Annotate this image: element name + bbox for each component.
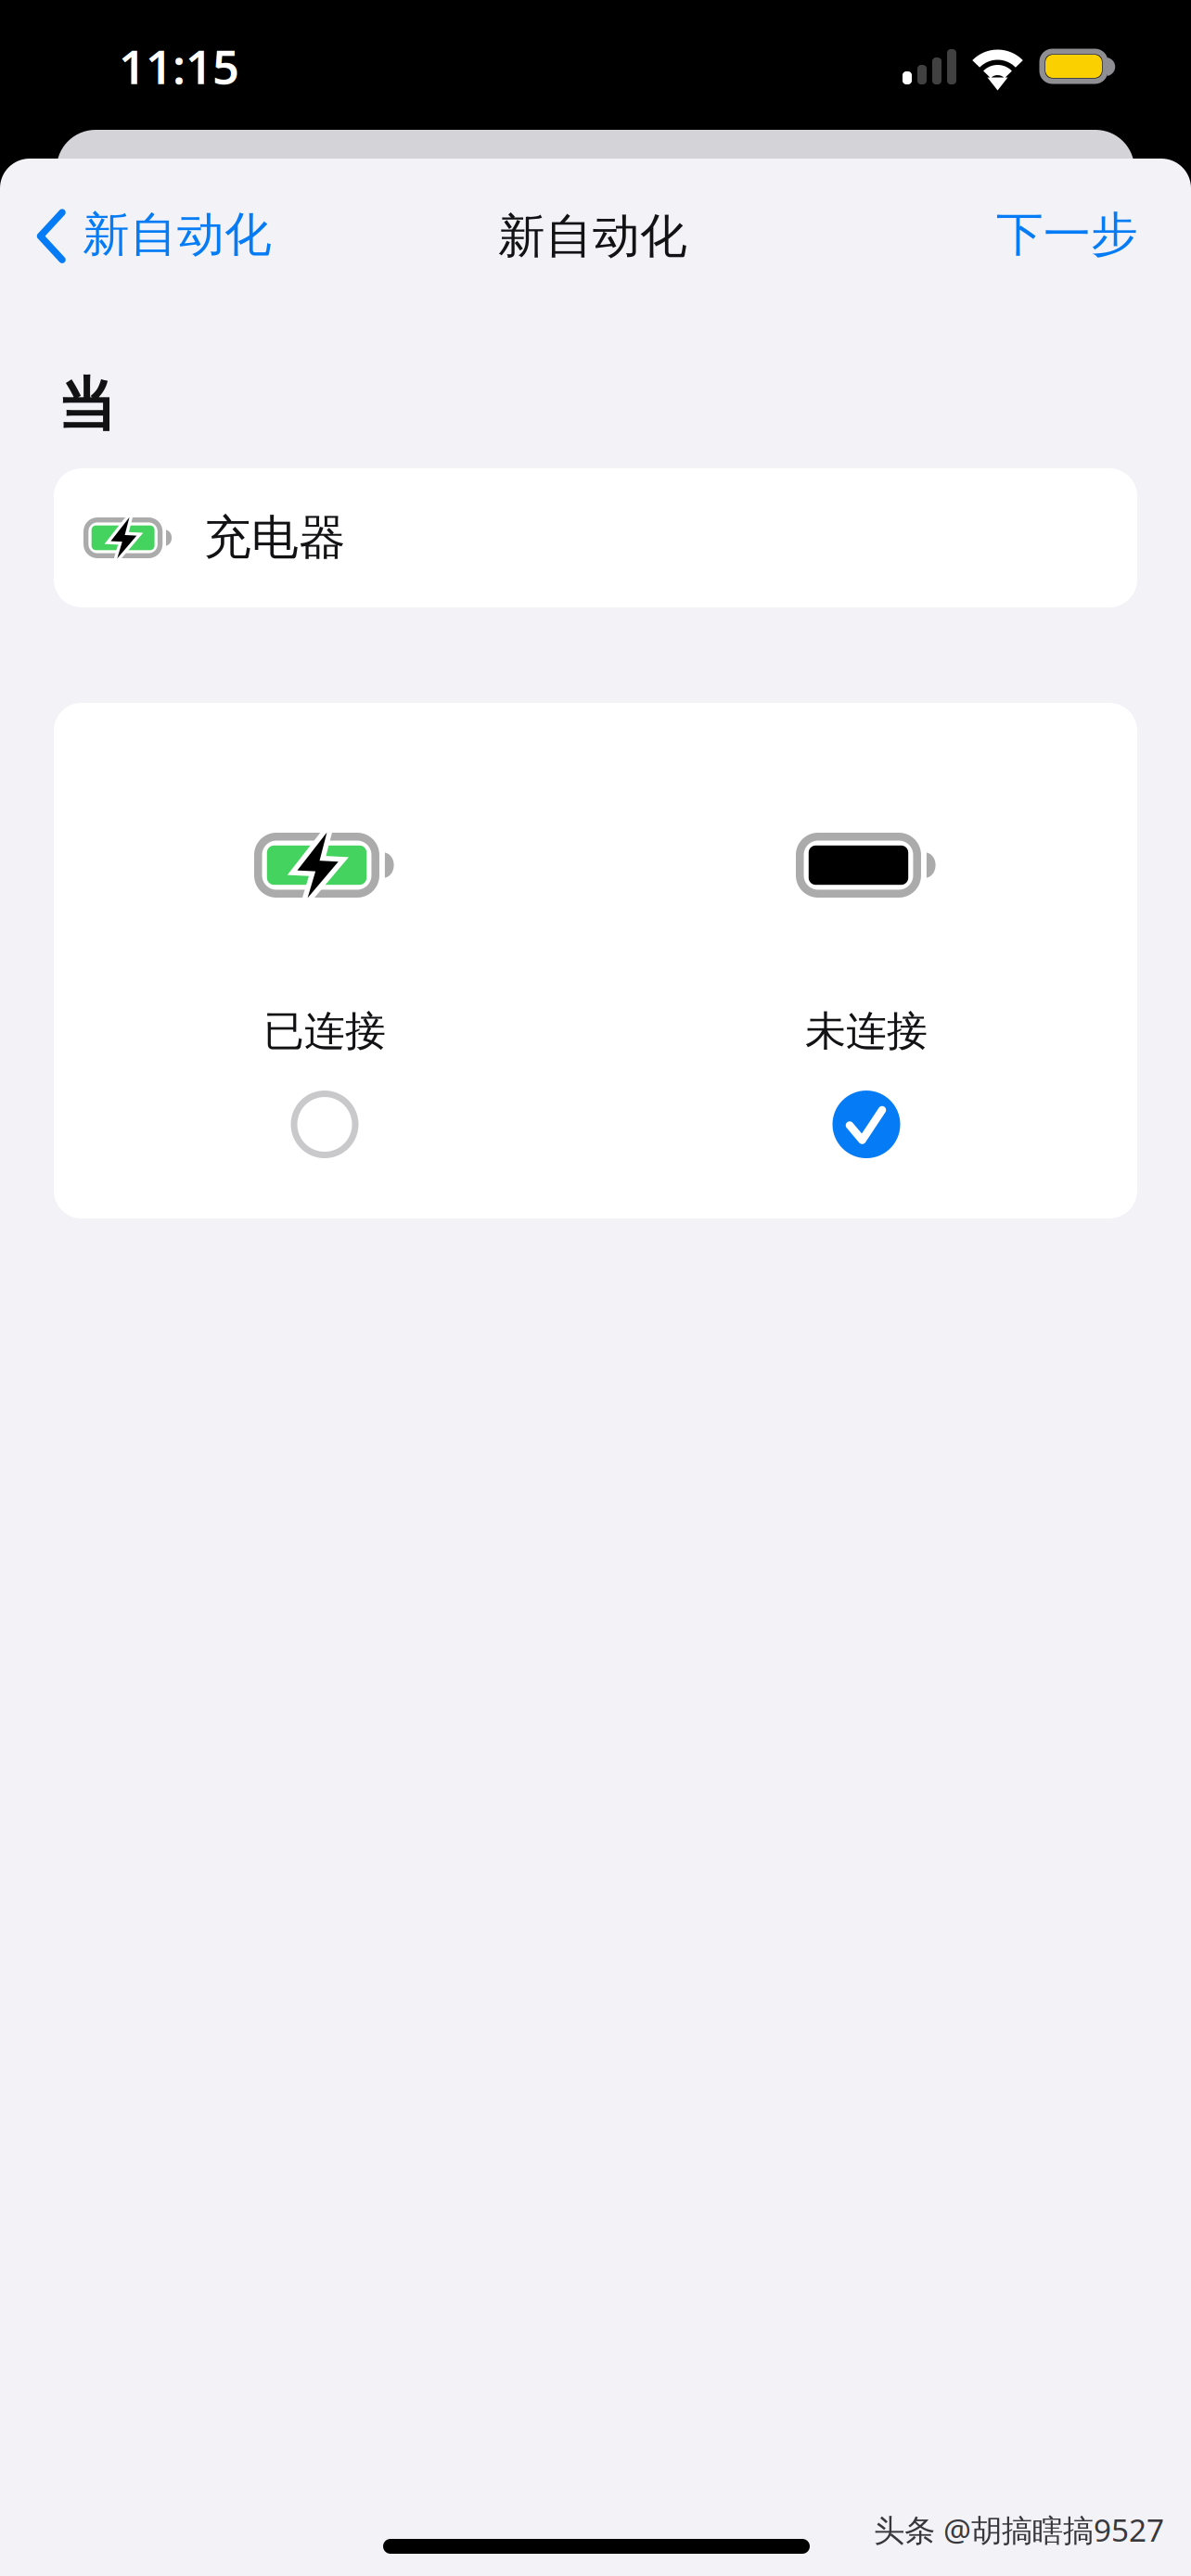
button[interactable]: 未连接 (595, 833, 1137, 1158)
button[interactable]: 下一步 (943, 191, 1191, 278)
staticText: 未连接 (805, 1006, 928, 1056)
button[interactable]: 已连接 (54, 833, 595, 1158)
staticText: 已连接 (263, 1006, 386, 1056)
button[interactable]: 新自动化 (0, 191, 272, 278)
staticText: 11:15 (119, 35, 239, 97)
button[interactable]: 充电器 (54, 468, 1137, 607)
staticText: 新自动化 (83, 206, 272, 264)
staticText: 充电器 (204, 509, 346, 567)
staticText: 新自动化 (498, 208, 687, 265)
staticText: 当 (58, 370, 116, 441)
staticText: 下一步 (996, 206, 1138, 263)
staticText: 头条 @胡搞瞎搞9527 (874, 2509, 1164, 2550)
